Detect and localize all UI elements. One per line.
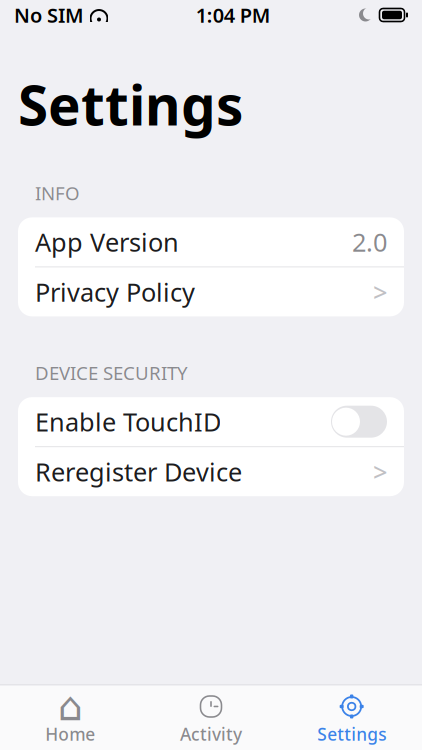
staticText: ⌂ — [58, 684, 83, 729]
staticText: 1:04 PM — [196, 2, 271, 28]
button[interactable]: Reregister Device — [18, 447, 404, 496]
staticText: Privacy Policy — [35, 275, 195, 309]
staticText: 2.0 — [352, 225, 387, 259]
button[interactable]: ⌂ — [0, 685, 141, 750]
staticText: Settings — [317, 722, 386, 745]
button[interactable]: Settings — [281, 685, 422, 750]
staticText: > — [373, 275, 387, 309]
staticText: No SIM — [14, 2, 84, 28]
button[interactable]: Activity — [141, 685, 281, 750]
staticText: Enable TouchID — [35, 405, 221, 438]
staticText: Activity — [180, 722, 242, 745]
staticText: Settings — [18, 68, 243, 141]
staticText: > — [373, 455, 387, 488]
staticText: Reregister Device — [35, 455, 242, 488]
staticText: INFO — [35, 181, 80, 205]
staticText: App Version — [35, 225, 179, 259]
button[interactable]: Enable TouchID — [331, 406, 387, 438]
button[interactable]: Privacy Policy — [18, 267, 404, 316]
staticText: DEVICE SECURITY — [35, 360, 188, 385]
staticText: Home — [45, 722, 95, 745]
